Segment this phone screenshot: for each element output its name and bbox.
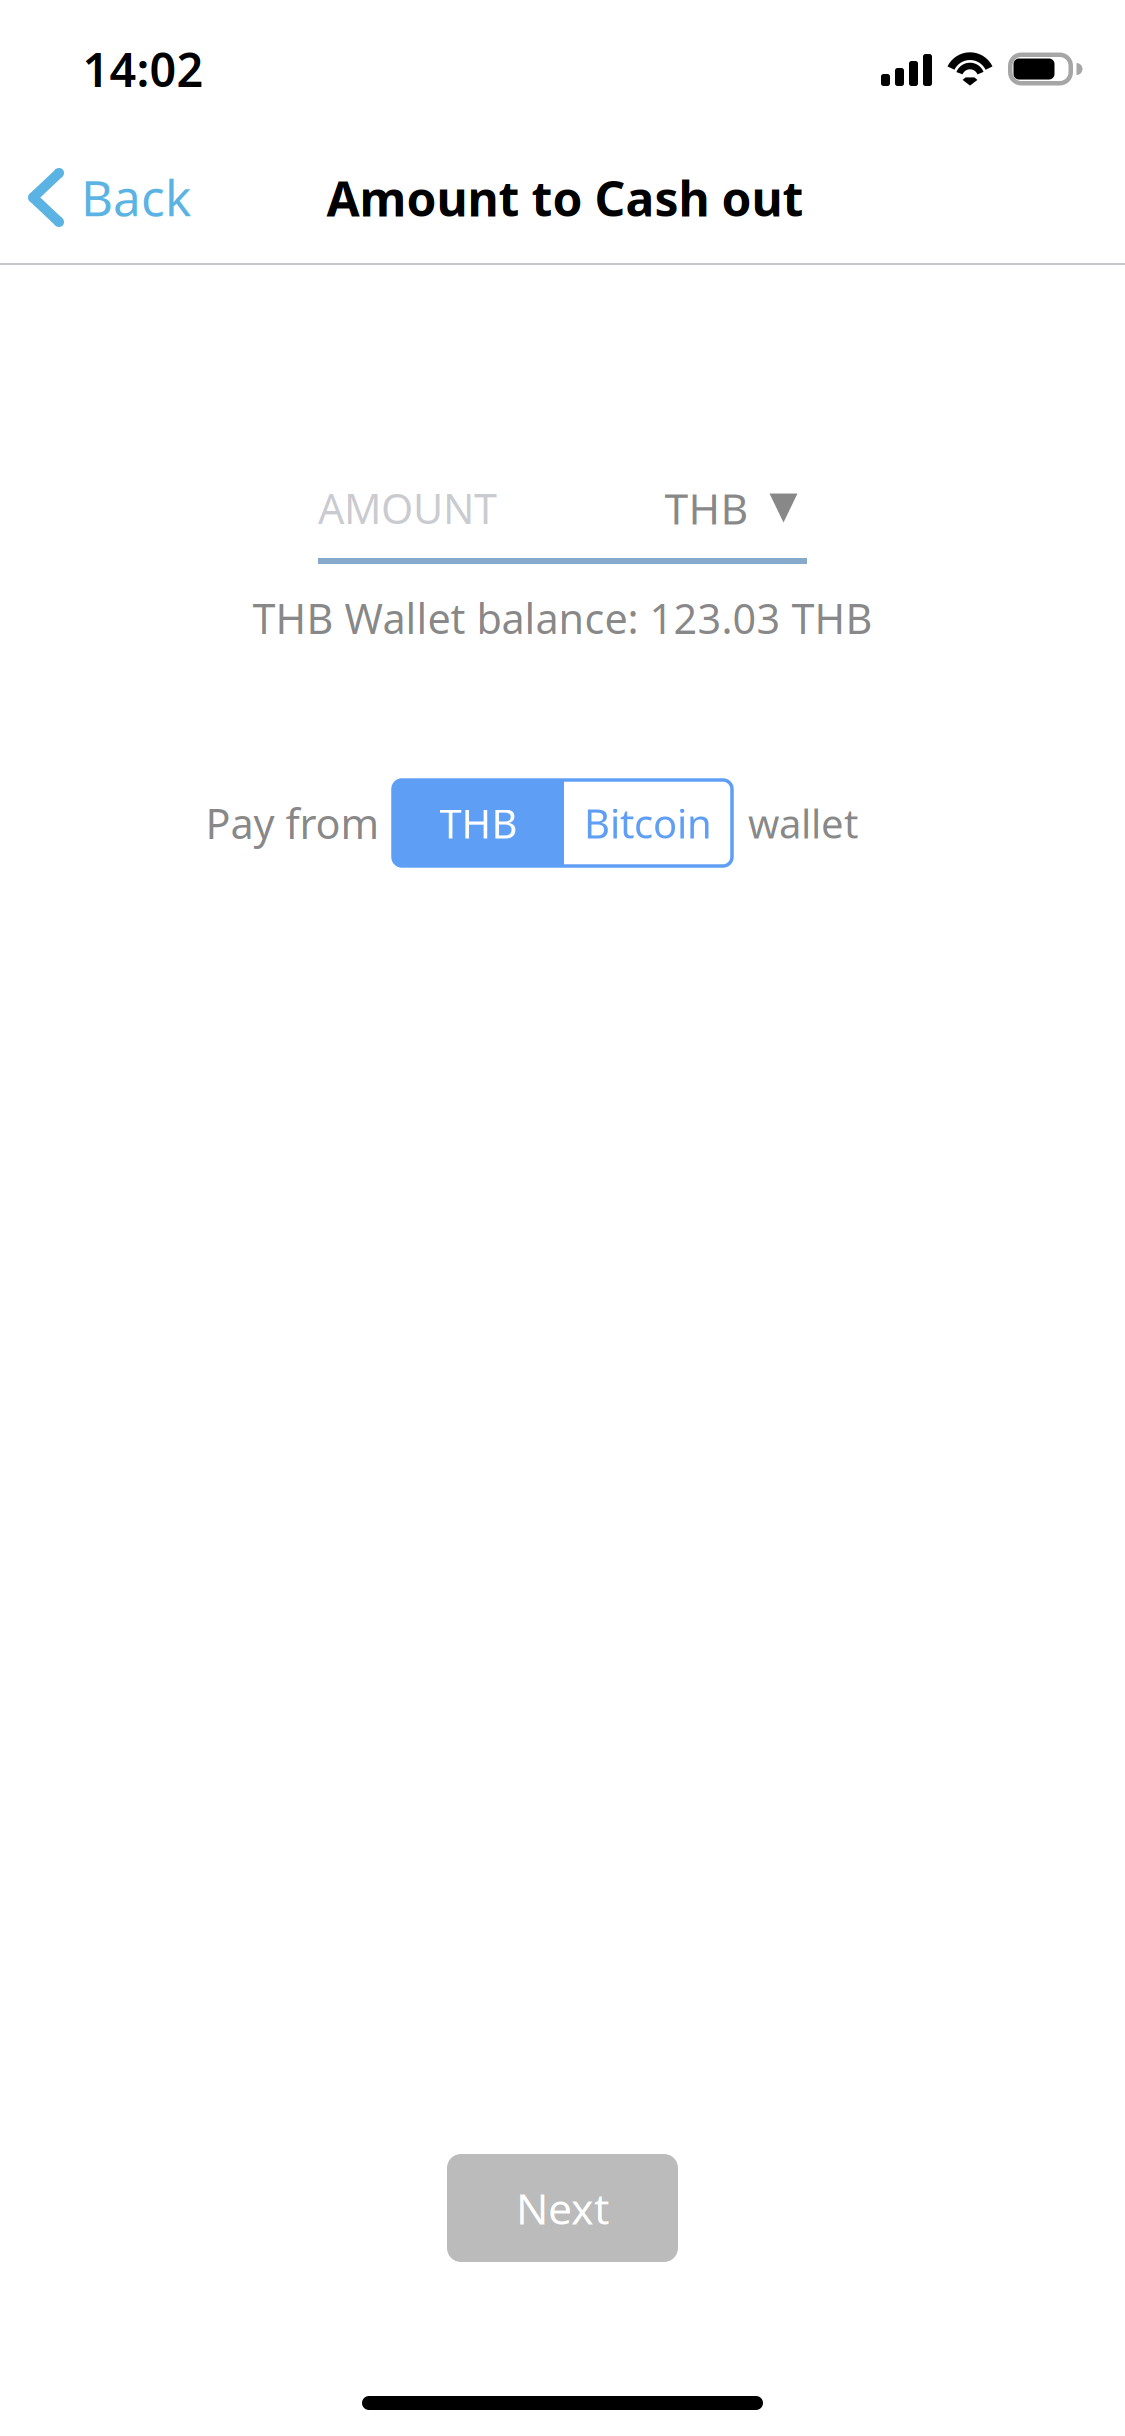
staticText: 14:02 bbox=[82, 38, 203, 100]
button[interactable]: Bitcoin bbox=[564, 780, 732, 866]
staticText: THB bbox=[664, 480, 748, 536]
staticText: AMOUNT bbox=[318, 481, 497, 535]
staticText: THB Wallet balance: 123.03 THB bbox=[252, 591, 872, 645]
staticText: Bitcoin bbox=[584, 796, 712, 849]
staticText: THB bbox=[439, 796, 517, 849]
button[interactable]: Amount bbox=[318, 469, 648, 547]
staticText: wallet bbox=[748, 796, 858, 849]
staticText: Pay from bbox=[205, 796, 379, 850]
staticText: Next bbox=[516, 2180, 609, 2236]
button[interactable]: THB bbox=[393, 780, 564, 866]
staticText: Back bbox=[81, 164, 191, 230]
staticText: Amount to Cash out bbox=[326, 166, 803, 230]
button[interactable]: THB, choose currency bbox=[666, 469, 796, 547]
button[interactable]: Back bbox=[0, 134, 203, 260]
button[interactable]: Next bbox=[447, 2154, 678, 2262]
